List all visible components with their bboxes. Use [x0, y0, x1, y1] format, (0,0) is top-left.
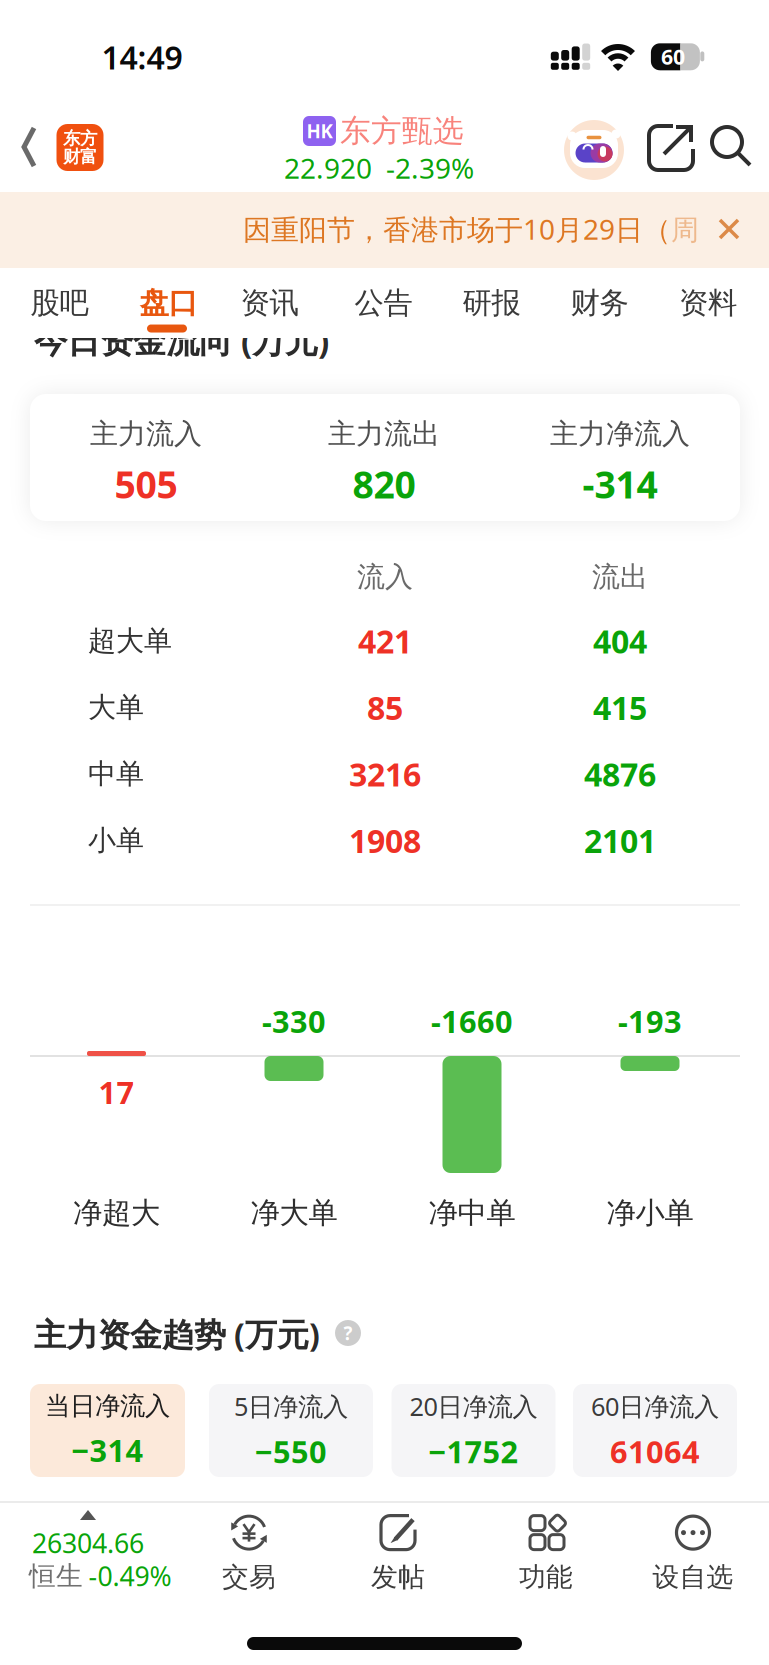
button[interactable]: 资讯: [221, 269, 317, 337]
staticText: -330: [262, 1001, 326, 1041]
staticText: 设自选: [652, 1561, 733, 1593]
staticText: 研报: [462, 285, 520, 321]
staticText: 交易: [222, 1561, 276, 1593]
button[interactable]: 盘口: [120, 269, 216, 337]
button[interactable]: AI助手: [564, 120, 624, 180]
staticText: 资讯: [240, 285, 298, 321]
button[interactable]: 发帖: [371, 1513, 425, 1593]
staticText: 资料: [679, 285, 737, 321]
staticText: 净超大: [73, 1195, 160, 1231]
staticText: 小单: [88, 823, 144, 858]
staticText: 当日净流入: [45, 1391, 170, 1422]
button[interactable]: 股吧: [11, 269, 107, 337]
staticText: 财务: [570, 285, 628, 321]
staticText: -314: [582, 459, 657, 509]
button[interactable]: 当日净流入: [30, 1384, 185, 1477]
staticText: 恒生: [29, 1560, 83, 1592]
staticText: 3216: [349, 753, 421, 795]
staticText: 流入: [357, 560, 413, 594]
staticText: 主力流出: [328, 417, 440, 451]
staticText: 1908: [349, 819, 421, 862]
staticText: −550: [255, 1431, 327, 1472]
staticText: −1752: [428, 1431, 518, 1472]
staticText: 因重阳节，香港市场于10月29日（周: [243, 210, 699, 248]
staticText: 净大单: [250, 1195, 337, 1231]
staticText: 主力资金趋势 (万元): [34, 1313, 320, 1355]
button[interactable]: 设自选: [652, 1513, 733, 1593]
button[interactable]: 20日净流入: [391, 1384, 555, 1477]
staticText: 20日净流入: [409, 1389, 537, 1423]
staticText: 415: [593, 686, 647, 729]
staticText: 今日资金流向 (万元): [34, 318, 329, 362]
staticText: 60日净流入: [591, 1389, 719, 1423]
button[interactable]: 资料: [660, 269, 756, 337]
staticText: 421: [358, 620, 412, 662]
button[interactable]: 关闭: [708, 208, 750, 250]
staticText: 85: [367, 686, 403, 729]
staticText: 股吧: [30, 285, 88, 321]
staticText: 公告: [354, 285, 412, 321]
button[interactable]: 东方财富: [56, 124, 103, 171]
staticText: ?: [343, 1321, 352, 1345]
staticText: 22.920 -2.39%: [284, 149, 474, 187]
staticText: 820: [352, 459, 415, 509]
staticText: 净中单: [428, 1195, 515, 1231]
button[interactable]: 研报: [443, 269, 539, 337]
staticText: 17: [98, 1072, 134, 1112]
staticText: HK: [306, 119, 332, 143]
button[interactable]: 5日净流入: [209, 1384, 373, 1477]
staticText: 东方: [63, 128, 97, 149]
staticText: -193: [618, 1001, 682, 1041]
staticText: 5日净流入: [234, 1389, 348, 1423]
staticText: 505: [114, 459, 177, 509]
staticText: 14:49: [101, 36, 182, 78]
staticText: 61064: [610, 1431, 700, 1472]
button[interactable]: 恒生指数: [0, 1505, 176, 1601]
staticText: −314: [71, 1430, 143, 1470]
button[interactable]: 60日净流入: [573, 1384, 737, 1477]
staticText: 发帖: [371, 1561, 425, 1593]
button[interactable]: 交易: [222, 1513, 276, 1593]
staticText: -0.49%: [88, 1558, 171, 1594]
staticText: 主力净流入: [550, 417, 690, 451]
staticText: 超大单: [88, 624, 172, 658]
button[interactable]: 财务: [551, 269, 647, 337]
staticText: 大单: [88, 690, 144, 725]
staticText: 2101: [584, 819, 656, 862]
staticText: 东方甄选: [340, 112, 464, 150]
button[interactable]: 搜索: [710, 125, 752, 167]
button[interactable]: 公告: [335, 269, 431, 337]
staticText: 流出: [592, 560, 648, 594]
staticText: 4876: [584, 753, 656, 795]
staticText: 404: [593, 620, 647, 662]
staticText: 主力流入: [90, 417, 202, 451]
button[interactable]: 功能: [519, 1513, 573, 1593]
staticText: 26304.66: [32, 1525, 144, 1561]
staticText: 净小单: [606, 1195, 693, 1231]
staticText: -1660: [431, 1001, 513, 1041]
button[interactable]: 分享: [647, 124, 695, 172]
staticText: 中单: [88, 757, 144, 791]
button[interactable]: 返回: [13, 126, 47, 170]
button[interactable]: 说明: [335, 1320, 361, 1346]
staticText: 功能: [519, 1561, 573, 1593]
staticText: 60: [661, 42, 685, 71]
staticText: 盘口: [139, 285, 197, 321]
staticText: 财富: [63, 146, 97, 167]
